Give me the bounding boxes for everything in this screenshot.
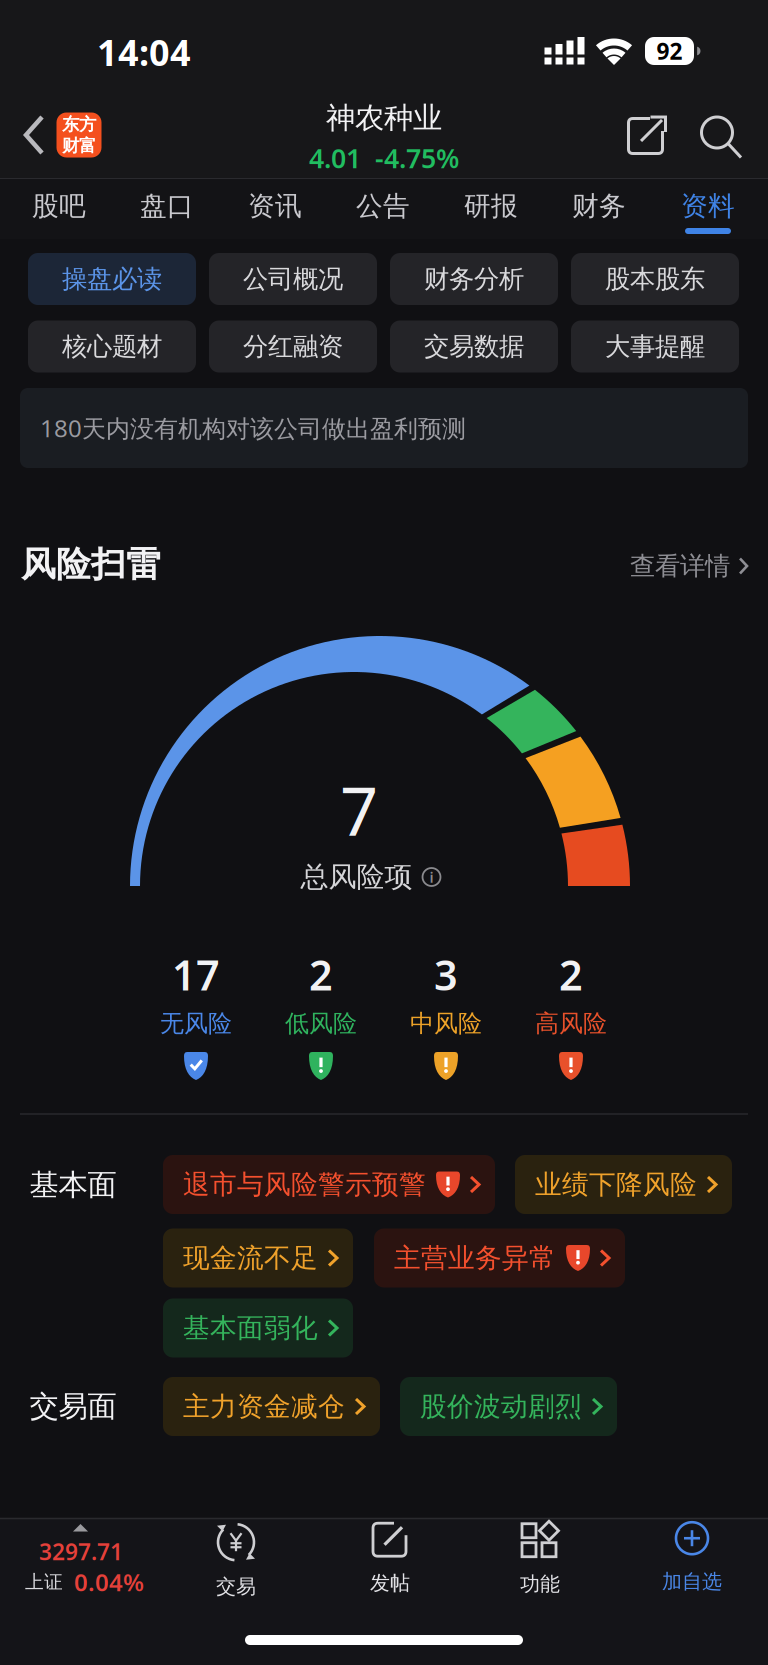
staticText: 查看详情 <box>630 550 730 581</box>
staticText: 4.01 -4.75% <box>309 140 459 176</box>
staticText: 风险扫雷 <box>21 543 161 586</box>
staticText: 180天内没有机构对该公司做出盈利预测 <box>40 412 466 444</box>
button[interactable]: 大事提醒 <box>571 320 739 372</box>
staticText: 基本面弱化 <box>183 1312 318 1344</box>
button[interactable]: 股价波动剧烈 <box>400 1377 617 1436</box>
staticText: 3 <box>434 947 458 1002</box>
button[interactable]: 上证指数 <box>2 1522 172 1592</box>
staticText: 分红融资 <box>243 331 343 362</box>
button[interactable]: 研报 <box>464 190 518 222</box>
staticText: 2 <box>309 947 333 1002</box>
button[interactable]: 业绩下降风险 <box>515 1155 732 1214</box>
staticText: 资讯 <box>248 190 302 222</box>
staticText: 大事提醒 <box>605 331 705 362</box>
staticText: 14:04 <box>97 28 191 76</box>
staticText: 交易面 <box>29 1388 116 1424</box>
staticText: 3297.71 <box>39 1536 123 1566</box>
staticText: 17 <box>172 947 220 1002</box>
staticText: 退市与风险警示预警 <box>183 1168 426 1201</box>
staticText: 无风险 <box>160 1009 232 1038</box>
button[interactable]: 公司概况 <box>209 253 377 305</box>
button[interactable]: 查看详情 <box>630 550 748 581</box>
staticText: 股价波动剧烈 <box>420 1390 582 1423</box>
staticText: 神农种业 <box>326 100 442 136</box>
button[interactable]: 股本股东 <box>571 253 739 305</box>
staticText: 加自选 <box>662 1569 722 1594</box>
staticText: 基本面 <box>29 1167 116 1203</box>
staticText: 0.04% <box>74 1566 144 1598</box>
staticText: 股本股东 <box>605 263 705 294</box>
staticText: 主营业务异常 <box>394 1242 556 1274</box>
staticText: 财务 <box>572 190 626 222</box>
staticText: 盘口 <box>140 190 194 222</box>
staticText: 资料 <box>681 190 735 222</box>
button[interactable]: 交易数据 <box>390 320 558 372</box>
staticText: i <box>429 867 433 887</box>
button[interactable]: 主营业务异常 <box>374 1228 625 1287</box>
staticText: 上证 <box>25 1570 63 1593</box>
staticText: 低风险 <box>285 1009 357 1038</box>
button[interactable]: 公告 <box>356 190 410 222</box>
staticText: 交易 <box>216 1574 256 1599</box>
button[interactable]: 分红融资 <box>209 320 377 372</box>
staticText: 功能 <box>520 1572 560 1596</box>
button[interactable]: Share <box>627 115 667 155</box>
staticText: 现金流不足 <box>183 1242 318 1274</box>
staticText: 财务分析 <box>424 263 524 294</box>
staticText: 92 <box>656 36 682 66</box>
button[interactable]: 核心题材 <box>28 320 196 372</box>
staticText: 核心题材 <box>62 331 162 362</box>
button[interactable]: 功能 <box>519 1520 561 1596</box>
button[interactable]: 资讯 <box>248 190 302 222</box>
staticText: 业绩下降风险 <box>535 1168 697 1201</box>
button[interactable]: 财务分析 <box>390 253 558 305</box>
staticText: 2 <box>559 947 583 1002</box>
button[interactable]: Back <box>22 113 46 157</box>
staticText: 主力资金减仓 <box>183 1390 345 1423</box>
staticText: 高风险 <box>535 1009 607 1038</box>
staticText: 7 <box>340 766 378 854</box>
staticText: 东方 <box>62 114 96 135</box>
staticText: 发帖 <box>370 1571 410 1595</box>
button[interactable]: 主力资金减仓 <box>163 1377 380 1436</box>
staticText: 公司概况 <box>243 263 343 294</box>
staticText: 公告 <box>356 190 410 222</box>
staticText: 总风险项 <box>300 860 412 894</box>
button[interactable]: 基本面弱化 <box>163 1298 353 1357</box>
button[interactable]: 加自选 <box>662 1520 722 1594</box>
staticText: 股吧 <box>32 190 86 222</box>
button[interactable]: 发帖 <box>370 1521 410 1595</box>
button[interactable]: 股吧 <box>32 190 86 222</box>
button[interactable]: Search <box>699 114 743 158</box>
staticText: 财富 <box>62 135 96 156</box>
staticText: 中风险 <box>410 1009 482 1038</box>
staticText: 交易数据 <box>424 331 524 362</box>
button[interactable]: 现金流不足 <box>163 1228 353 1287</box>
staticText: 研报 <box>464 190 518 222</box>
button[interactable]: 交易 <box>213 1519 259 1599</box>
button[interactable]: 资料 <box>681 190 735 222</box>
button[interactable]: 盘口 <box>140 190 194 222</box>
button[interactable]: 东方财富 <box>56 112 101 157</box>
button[interactable]: 退市与风险警示预警 <box>163 1155 495 1214</box>
button[interactable]: 财务 <box>572 190 626 222</box>
button[interactable]: 操盘必读 <box>28 253 196 305</box>
staticText: 操盘必读 <box>62 263 162 294</box>
